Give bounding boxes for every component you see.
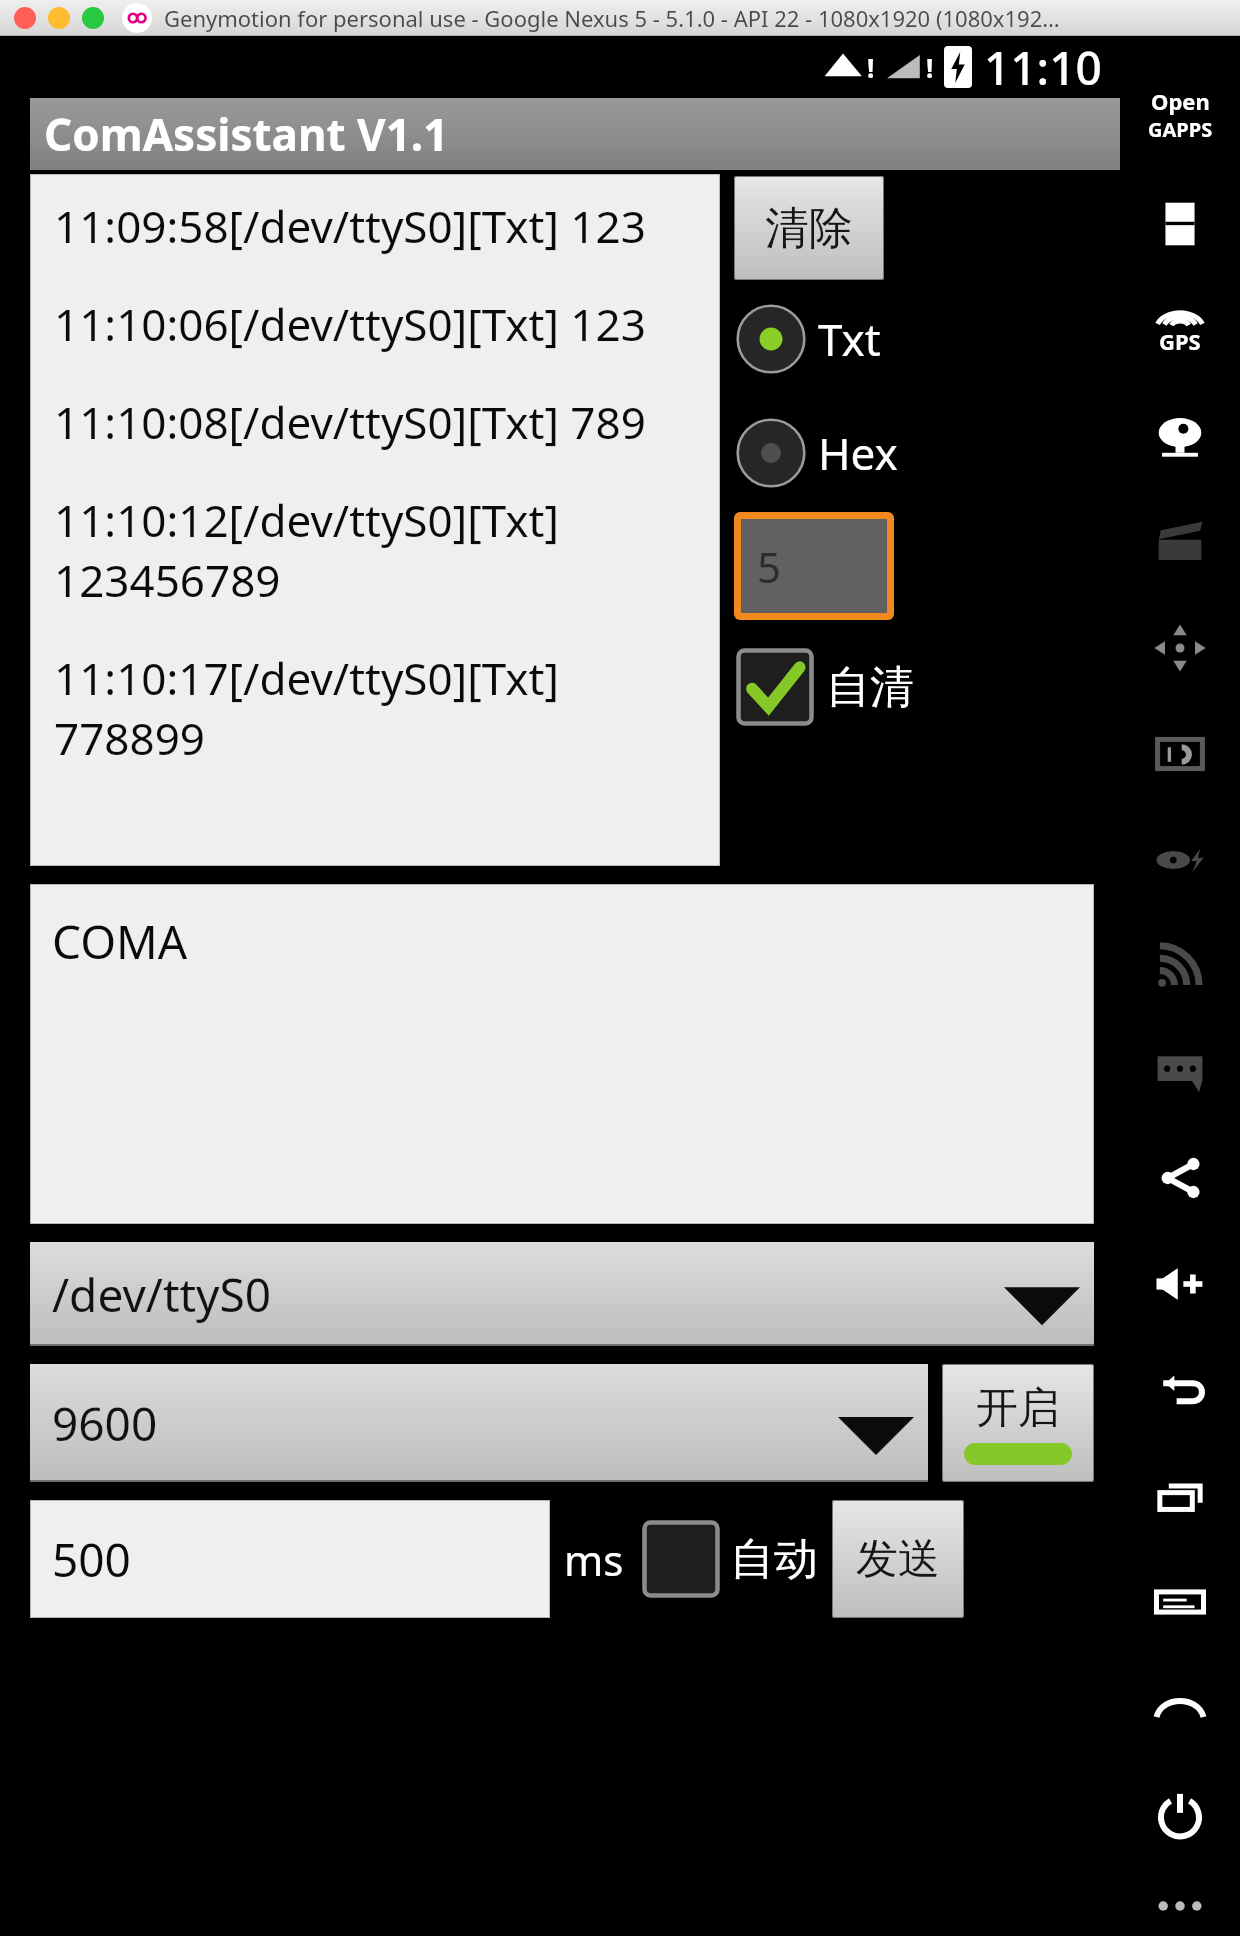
staticText: !: [867, 50, 875, 85]
staticText: !: [926, 50, 934, 85]
staticText: /dev/ttyS0: [52, 1263, 272, 1326]
button[interactable]: 清除: [734, 176, 884, 280]
button[interactable]: 5: [741, 519, 887, 613]
button[interactable]: Hex: [734, 416, 898, 490]
staticText: ms: [564, 1531, 624, 1588]
button[interactable]: Camera: [1136, 392, 1224, 480]
button[interactable]: Back: [1136, 1346, 1224, 1434]
staticText: 11:10:17[/dev/ttyS0][Txt] 778899: [54, 648, 710, 768]
button[interactable]: Accelerometer: [1136, 604, 1224, 692]
button[interactable]: Identifiers: [1136, 710, 1224, 798]
button[interactable]: 开启: [942, 1364, 1094, 1482]
button[interactable]: Share: [1136, 1134, 1224, 1222]
button[interactable]: SMS: [1136, 1028, 1224, 1116]
button[interactable]: 发送: [832, 1500, 964, 1618]
staticText: Genymotion for personal use - Google Nex…: [164, 3, 1060, 33]
staticText: COMA: [52, 910, 188, 973]
staticText: GAPPS: [1148, 116, 1213, 143]
staticText: 清除: [765, 201, 853, 256]
staticText: 自清: [826, 660, 914, 715]
staticText: 11:10:08[/dev/ttyS0][Txt] 789: [54, 392, 646, 452]
staticText: 9600: [52, 1392, 158, 1455]
button[interactable]: 9600: [30, 1364, 928, 1482]
staticText: 11:09:58[/dev/ttyS0][Txt] 123: [54, 196, 646, 256]
staticText: 500: [52, 1528, 131, 1591]
button[interactable]: 自清: [734, 646, 914, 728]
staticText: Txt: [818, 309, 881, 369]
button[interactable]: Volume up: [1136, 1240, 1224, 1328]
staticText: Open: [1151, 86, 1210, 116]
button[interactable]: Network: [1136, 922, 1224, 1010]
staticText: 5: [757, 538, 782, 595]
button[interactable]: Keyboard: [1136, 1558, 1224, 1646]
button[interactable]: Battery: [1136, 180, 1224, 268]
button[interactable]: /dev/ttyS0: [30, 1242, 1094, 1346]
button[interactable]: COMA: [30, 884, 1094, 1224]
staticText: Hex: [818, 423, 898, 483]
button[interactable]: 自动: [640, 1518, 818, 1600]
button[interactable]: Power: [1136, 1770, 1224, 1858]
button[interactable]: Open GAPPS: [1136, 70, 1224, 158]
staticText: 11:10:06[/dev/ttyS0][Txt] 123: [54, 294, 646, 354]
button[interactable]: 11:09:58[/dev/ttyS0][Txt] 123: [30, 174, 720, 866]
staticText: 自动: [730, 1532, 818, 1587]
staticText: 发送: [856, 1533, 940, 1586]
button[interactable]: More: [1136, 1876, 1224, 1936]
button[interactable]: 500: [30, 1500, 550, 1618]
staticText: 开启: [976, 1382, 1060, 1435]
button[interactable]: Record screen: [1136, 498, 1224, 586]
button[interactable]: GPS: [1136, 286, 1224, 374]
staticText: ComAssistant V1.1: [44, 104, 449, 164]
staticText: 11:10:12[/dev/ttyS0][Txt] 123456789: [54, 490, 559, 610]
staticText: GPS: [1159, 326, 1201, 356]
button[interactable]: Home: [1136, 1664, 1224, 1752]
staticText: 11:10: [984, 36, 1102, 98]
button[interactable]: Recents: [1136, 1452, 1224, 1540]
button[interactable]: Txt: [734, 302, 881, 376]
button[interactable]: Disk IO: [1136, 816, 1224, 904]
